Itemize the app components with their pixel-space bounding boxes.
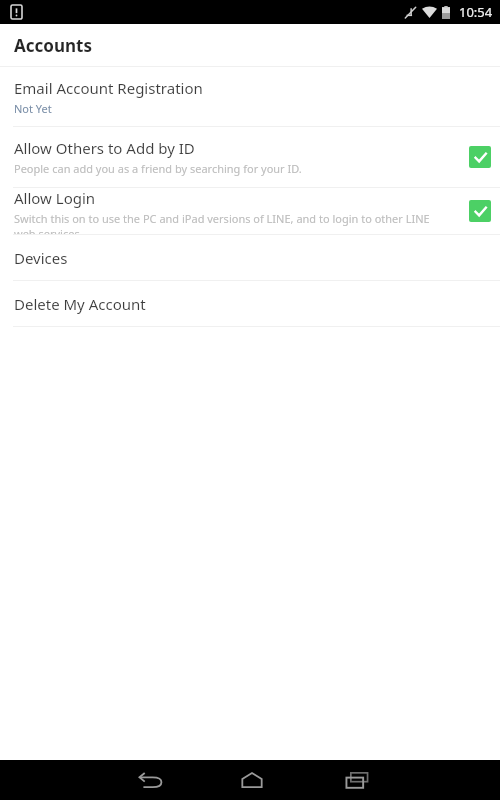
button[interactable]: Delete My Account <box>0 281 500 326</box>
button[interactable]: Recent apps <box>332 760 382 800</box>
staticText: People can add you as a friend by search… <box>14 161 302 176</box>
staticText: Switch this on to use the PC and iPad ve… <box>14 211 450 234</box>
button[interactable]: Allow Login <box>0 188 500 234</box>
button[interactable]: Allow Others to Add by ID <box>469 146 491 168</box>
staticText: 10:54 <box>459 3 493 21</box>
staticText: Delete My Account <box>14 294 146 314</box>
staticText: Email Account Registration <box>14 78 203 98</box>
staticText: Accounts <box>14 34 92 57</box>
staticText: Not Yet <box>14 101 52 116</box>
button[interactable]: Email Account Registration <box>0 67 500 126</box>
button[interactable]: Allow Login <box>469 200 491 222</box>
button[interactable]: Allow Others to Add by ID <box>0 127 500 187</box>
staticText: Devices <box>14 248 68 268</box>
button[interactable]: Back <box>125 760 175 800</box>
staticText: Allow Login <box>14 188 96 208</box>
button[interactable]: Home <box>227 760 277 800</box>
button[interactable]: Devices <box>0 235 500 280</box>
staticText: Allow Others to Add by ID <box>14 138 195 158</box>
